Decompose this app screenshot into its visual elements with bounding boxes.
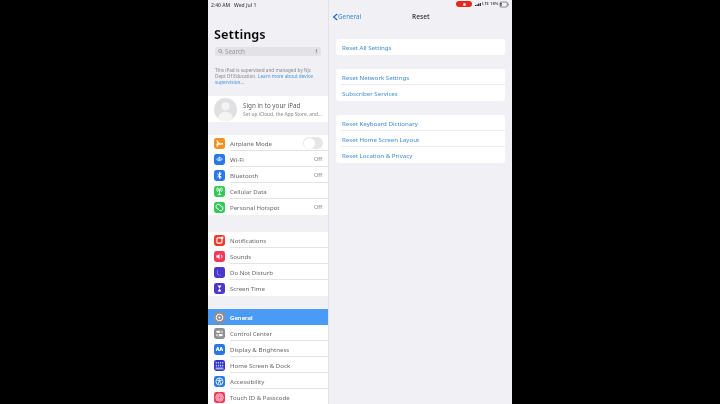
staticText: Sounds	[230, 252, 252, 260]
button[interactable]: Accessibility	[208, 373, 328, 389]
staticText: Learn more about device	[258, 73, 313, 79]
button[interactable]: Reset All Settings	[336, 39, 505, 55]
staticText: Bluetooth	[230, 171, 259, 179]
staticText: Notifications	[230, 236, 267, 244]
button[interactable]: Home Screen & Dock	[208, 357, 328, 373]
staticText: 2:40 AM	[211, 2, 231, 9]
button[interactable]: Do Not Disturb	[208, 264, 328, 280]
staticText: Reset Home Screen Layout	[342, 135, 420, 143]
button[interactable]: Sign in to your iPad	[208, 96, 328, 122]
staticText: Sign in to your iPad	[243, 101, 301, 110]
staticText: supervision...	[215, 79, 245, 85]
staticText: Cellular Data	[230, 187, 267, 195]
button[interactable]: Reset Network Settings	[336, 69, 505, 85]
staticText: Wi-Fi	[230, 155, 244, 163]
staticText: AA	[216, 346, 223, 353]
staticText: 18%	[490, 1, 499, 7]
staticText: Wed Jul 1	[234, 2, 257, 9]
button[interactable]: General	[208, 309, 328, 325]
button[interactable]: Control Center	[208, 325, 328, 341]
staticText: Reset Location & Privacy	[342, 151, 413, 159]
button[interactable]: Notifications	[208, 232, 328, 248]
staticText: General	[230, 313, 253, 321]
button[interactable]: Search	[215, 47, 321, 56]
staticText: Settings	[214, 26, 266, 43]
staticText: This iPad is supervised and managed by N…	[215, 67, 312, 73]
staticText: Set up iCloud, the App Store, and...	[243, 111, 322, 118]
staticText: Display & Brightness	[230, 345, 290, 353]
button[interactable]: Bluetooth	[208, 167, 328, 183]
button[interactable]: Wi-Fi	[208, 151, 328, 167]
button[interactable]: Airplane Mode toggle, off	[303, 137, 323, 149]
staticText: Off	[314, 203, 323, 211]
staticText: Accessibility	[230, 377, 265, 385]
staticText: Dept Of Education.	[215, 73, 258, 79]
button[interactable]: Reset Home Screen Layout	[336, 131, 505, 147]
staticText: Touch ID & Passcode	[230, 393, 290, 401]
staticText: Airplane Mode	[230, 139, 272, 147]
button[interactable]: Reset Location & Privacy	[336, 147, 505, 163]
staticText: Search	[225, 47, 245, 56]
staticText: Off	[314, 171, 323, 179]
button[interactable]: Touch ID & Passcode	[208, 389, 328, 404]
other: Back	[332, 13, 338, 21]
staticText: Screen Time	[230, 284, 265, 292]
button[interactable]: Sounds	[208, 248, 328, 264]
button[interactable]: Back	[332, 12, 362, 21]
staticText: Off	[314, 155, 323, 163]
staticText: Subscriber Services	[342, 89, 398, 97]
staticText: Reset Network Settings	[342, 73, 410, 81]
button[interactable]: Dictate search	[315, 49, 318, 54]
staticText: Reset	[412, 12, 430, 21]
staticText: Home Screen & Dock	[230, 361, 291, 369]
button[interactable]: Reset Keyboard Dictionary	[336, 115, 505, 131]
staticText: Do Not Disturb	[230, 268, 273, 276]
button[interactable]: AA	[208, 341, 328, 357]
staticText: Reset All Settings	[342, 43, 392, 51]
staticText: Personal Hotspot	[230, 203, 280, 211]
button[interactable]: Airplane Mode	[208, 135, 328, 151]
button[interactable]: Personal Hotspot	[208, 199, 328, 215]
button[interactable]: Cellular Data	[208, 183, 328, 199]
staticText: Control Center	[230, 329, 272, 337]
button[interactable]: Screen Time	[208, 280, 328, 296]
staticText: LTE	[482, 1, 489, 7]
staticText: General	[338, 12, 362, 21]
staticText: Reset Keyboard Dictionary	[342, 119, 418, 127]
button[interactable]: Subscriber Services	[336, 85, 505, 101]
